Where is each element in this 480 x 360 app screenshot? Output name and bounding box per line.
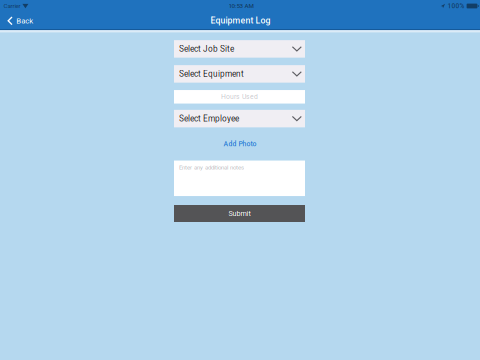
staticText: Select Job Site — [179, 44, 234, 54]
staticText: Select Equipment — [179, 69, 244, 79]
button[interactable]: Select Employee — [174, 110, 305, 127]
button[interactable]: Add Photo — [217, 137, 262, 151]
staticText: Hours Used — [221, 93, 258, 101]
staticText: Submit — [228, 209, 250, 218]
staticText: Carrier — [4, 2, 21, 10]
button[interactable]: Enter any additional notes — [174, 161, 305, 196]
button[interactable]: Submit — [174, 205, 305, 222]
button[interactable]: Hours Used — [174, 90, 305, 103]
staticText: Back — [16, 16, 33, 25]
staticText: 10:53 AM — [228, 2, 253, 10]
button[interactable]: Back — [2, 12, 38, 29]
button[interactable]: Select Equipment — [174, 65, 305, 83]
staticText: Equipment Log — [210, 15, 270, 26]
staticText: Add Photo — [223, 140, 256, 148]
staticText: Enter any additional notes — [179, 164, 244, 171]
staticText: Select Employee — [179, 114, 239, 123]
staticText: 100% — [447, 2, 464, 10]
button[interactable]: Select Job Site — [174, 40, 305, 58]
